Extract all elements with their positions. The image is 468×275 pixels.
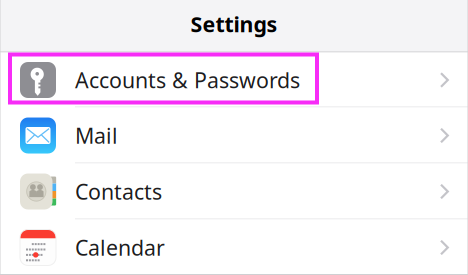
staticText: Mail: [75, 121, 118, 150]
button[interactable]: Accounts & Passwords: [0, 52, 468, 107]
staticText: Calendar: [75, 233, 165, 262]
staticText: Accounts & Passwords: [75, 66, 300, 94]
button[interactable]: Contacts: [0, 163, 468, 219]
staticText: Contacts: [75, 177, 162, 206]
staticText: Settings: [190, 10, 277, 38]
button[interactable]: Calendar: [0, 219, 468, 275]
button[interactable]: Mail: [0, 107, 468, 163]
